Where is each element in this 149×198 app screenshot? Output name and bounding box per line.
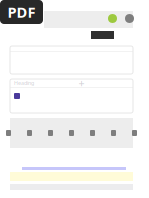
staticText: Heading [14,79,34,87]
staticText: PDF [7,2,35,22]
staticText: + [78,76,84,90]
